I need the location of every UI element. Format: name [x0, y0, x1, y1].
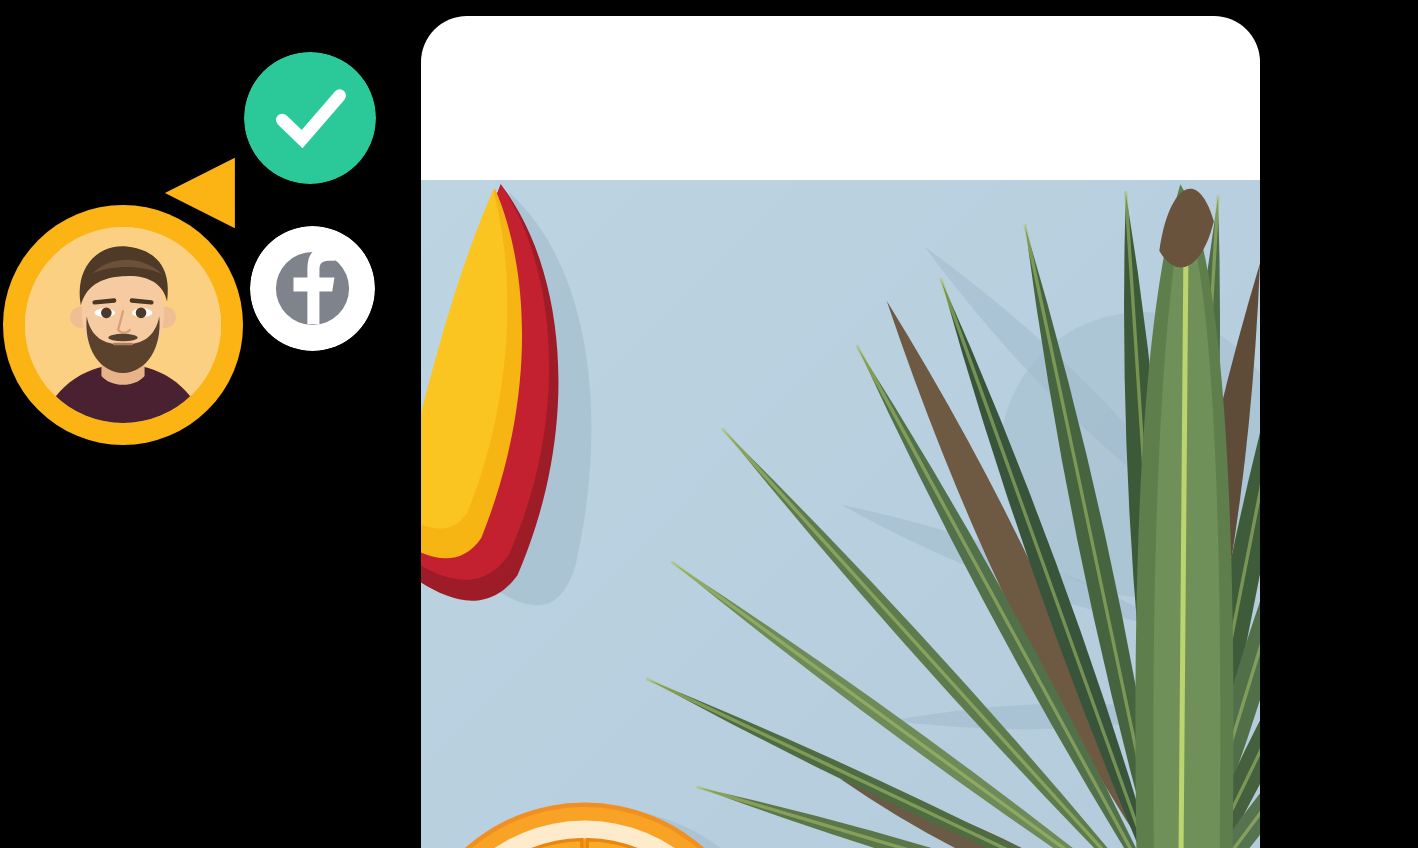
button[interactable]: Profile picture — [3, 205, 243, 445]
button[interactable]: Verified — [244, 52, 376, 184]
button[interactable]: Post photo — [421, 180, 1260, 848]
button[interactable] — [421, 16, 1260, 848]
button[interactable]: Facebook — [250, 226, 375, 351]
